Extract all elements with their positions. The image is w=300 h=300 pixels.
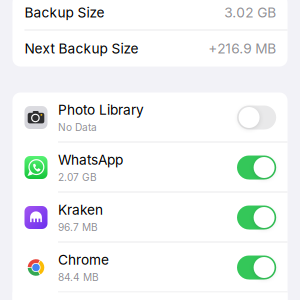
staticText: Backup Size	[24, 4, 104, 21]
button[interactable]: Backup Size	[12, 0, 287, 30]
staticText: 84.4 MB	[58, 271, 99, 283]
staticText: Chrome	[58, 252, 109, 268]
staticText: Kraken	[58, 202, 103, 218]
staticText: 3.02 GB	[224, 4, 276, 21]
button[interactable]: Kraken	[12, 192, 287, 242]
staticText: Next Backup Size	[24, 40, 138, 57]
button[interactable]: Photo Library	[12, 92, 287, 142]
staticText: No Data	[58, 121, 97, 133]
button[interactable]: WhatsApp	[12, 142, 287, 192]
staticText: Photo Library	[58, 102, 144, 118]
button[interactable]: Chrome	[12, 242, 287, 292]
staticText: 2.07 GB	[58, 171, 97, 183]
button[interactable]: Next Backup Size	[12, 30, 287, 66]
staticText: 96.7 MB	[58, 221, 98, 233]
staticText: WhatsApp	[58, 152, 123, 168]
staticText: +216.9 MB	[208, 40, 276, 57]
